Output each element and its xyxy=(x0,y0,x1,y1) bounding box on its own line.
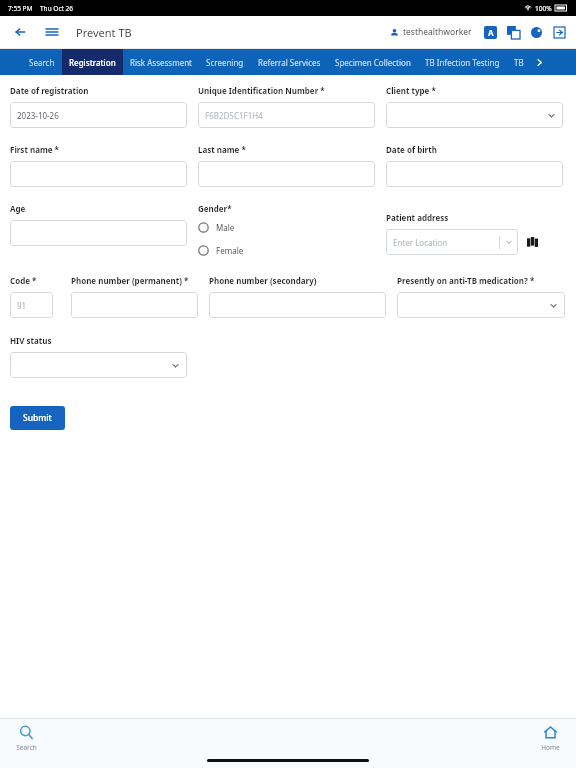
button[interactable]: Back xyxy=(10,22,30,42)
staticText: Client type * xyxy=(386,85,436,96)
staticText: Prevent TB xyxy=(76,25,132,40)
button[interactable]: Referral Services xyxy=(251,49,328,75)
staticText: TB Infection Testing xyxy=(425,57,500,68)
button[interactable]: Screening xyxy=(199,49,251,75)
button[interactable] xyxy=(10,220,187,246)
staticText: Thu Oct 26 xyxy=(40,4,74,13)
button[interactable]: Enter Location xyxy=(386,229,518,255)
staticText: 2023-10-26 xyxy=(17,110,59,121)
button[interactable]: Home xyxy=(532,725,568,752)
button[interactable]: TB Infection Testing xyxy=(418,49,507,75)
button[interactable] xyxy=(386,102,563,128)
button[interactable]: TB xyxy=(507,49,531,75)
staticText: testhealthworker xyxy=(403,26,472,38)
staticText: Presently on anti-TB medication? * xyxy=(397,275,535,286)
button[interactable]: Open map xyxy=(525,235,539,249)
staticText: Age xyxy=(10,203,26,214)
staticText: Registration xyxy=(69,57,116,68)
button[interactable]: Male xyxy=(198,220,235,235)
staticText: Patient address xyxy=(386,212,449,223)
staticText: Specimen Collection xyxy=(335,57,411,68)
button[interactable]: Specimen Collection xyxy=(328,49,418,75)
button[interactable]: Theme xyxy=(530,26,543,39)
staticText: Search xyxy=(29,57,55,68)
staticText: Unique Identification Number * xyxy=(198,85,325,96)
button[interactable]: Translate xyxy=(507,26,520,39)
button[interactable]: More tabs xyxy=(531,49,547,75)
staticText: Gender* xyxy=(198,203,232,214)
button[interactable]: Menu xyxy=(42,22,62,42)
staticText: Search xyxy=(16,743,37,752)
staticText: Last name * xyxy=(198,144,246,155)
staticText: Male xyxy=(216,222,235,233)
staticText: Risk Assessment xyxy=(130,57,192,68)
button[interactable]: Search xyxy=(8,725,44,752)
button[interactable]: 91 xyxy=(10,292,53,318)
button[interactable] xyxy=(198,161,375,187)
button[interactable]: Registration xyxy=(62,49,123,75)
button[interactable] xyxy=(71,292,198,318)
staticText: Home xyxy=(541,743,560,752)
staticText: 100% xyxy=(535,4,552,13)
staticText: HIV status xyxy=(10,335,52,346)
button[interactable]: Female xyxy=(198,243,244,258)
staticText: Referral Services xyxy=(258,57,321,68)
button[interactable]: Language xyxy=(484,26,497,39)
button[interactable] xyxy=(386,161,563,187)
button[interactable]: Risk Assessment xyxy=(123,49,199,75)
staticText: 91 xyxy=(17,300,27,311)
staticText: Female xyxy=(216,245,244,256)
button[interactable]: 2023-10-26 xyxy=(10,102,187,128)
button[interactable]: F6B2D5C1F1H4 xyxy=(198,102,375,128)
button[interactable]: Submit xyxy=(10,406,65,430)
staticText: 7:55 PM xyxy=(8,4,33,13)
button[interactable] xyxy=(209,292,386,318)
button[interactable]: Search xyxy=(22,49,62,75)
staticText: Date of registration xyxy=(10,85,89,96)
staticText: Phone number (secondary) xyxy=(209,275,317,286)
button[interactable]: Logout xyxy=(553,26,566,39)
staticText: TB xyxy=(514,57,524,68)
staticText: Enter Location xyxy=(393,237,499,248)
staticText: A xyxy=(488,27,494,38)
staticText: Submit xyxy=(23,412,52,424)
staticText: Code * xyxy=(10,275,37,286)
button[interactable] xyxy=(397,292,565,318)
staticText: F6B2D5C1F1H4 xyxy=(205,110,263,121)
button[interactable] xyxy=(10,352,187,378)
button[interactable] xyxy=(10,161,187,187)
staticText: Phone number (permanent) * xyxy=(71,275,189,286)
staticText: First name * xyxy=(10,144,59,155)
button[interactable]: testhealthworker xyxy=(390,26,472,38)
staticText: Screening xyxy=(206,57,244,68)
staticText: Date of birth xyxy=(386,144,437,155)
